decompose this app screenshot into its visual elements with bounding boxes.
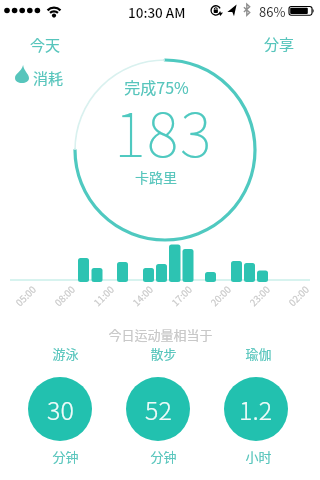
staticText: 小时 xyxy=(245,447,272,466)
staticText: 卡路里 xyxy=(135,167,177,187)
staticText: 183 xyxy=(114,87,213,174)
staticText: 今日运动量相当于 xyxy=(108,325,213,344)
staticText: 分钟 xyxy=(52,447,79,466)
staticText: 消耗 xyxy=(33,67,64,89)
staticText: 10:30 AM xyxy=(128,2,186,22)
staticText: 瑜伽 xyxy=(245,344,272,363)
button[interactable]: 分享 xyxy=(264,33,295,55)
staticText: 05:00 xyxy=(12,282,38,308)
staticText: 散步 xyxy=(150,344,177,363)
staticText: 52 xyxy=(145,391,172,427)
button[interactable]: 30 xyxy=(28,377,92,441)
staticText: 08:00 xyxy=(51,282,77,308)
button[interactable]: 52 xyxy=(126,377,190,441)
button[interactable]: 1.2 xyxy=(224,377,288,441)
staticText: 02:00 xyxy=(285,282,311,308)
staticText: 分钟 xyxy=(150,447,177,466)
staticText: 23:00 xyxy=(246,282,272,308)
staticText: 30 xyxy=(47,391,74,427)
staticText: 11:00 xyxy=(90,282,116,308)
button[interactable]: 消耗 xyxy=(33,67,64,89)
staticText: 分享 xyxy=(264,33,295,55)
staticText: 17:00 xyxy=(168,282,194,308)
staticText: 14:00 xyxy=(129,282,155,308)
staticText: 完成75% xyxy=(124,75,189,98)
staticText: 86% xyxy=(259,2,286,21)
staticText: 今天 xyxy=(30,34,61,56)
staticText: 游泳 xyxy=(52,344,79,363)
staticText: 1.2 xyxy=(239,391,273,427)
button[interactable]: 今天 xyxy=(30,34,61,56)
staticText: 20:00 xyxy=(207,282,233,308)
